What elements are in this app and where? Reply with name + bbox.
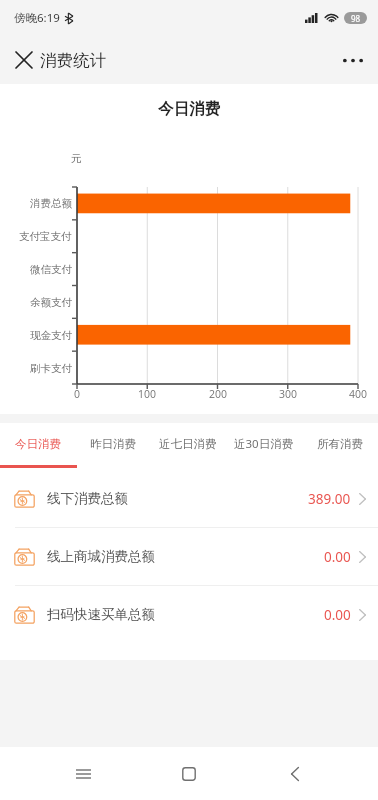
- button[interactable]: 昨日消费: [75, 423, 150, 465]
- staticText: 元: [71, 152, 82, 165]
- staticText: 0.00: [324, 606, 351, 624]
- staticText: 昨日消费: [90, 437, 136, 451]
- button[interactable]: 扫码快速买单总额: [0, 586, 378, 643]
- button[interactable]: Close: [6, 42, 42, 78]
- button[interactable]: 线下消费总额: [0, 470, 378, 527]
- staticText: 今日消费: [158, 99, 220, 119]
- staticText: 今日消费: [15, 437, 61, 451]
- staticText: 消费总额: [30, 197, 72, 210]
- button[interactable]: 今日消费: [0, 423, 75, 465]
- button[interactable]: 近七日消费: [150, 423, 226, 465]
- staticText: 线上商城消费总额: [47, 548, 155, 565]
- button[interactable]: 线上商城消费总额: [0, 528, 378, 585]
- staticText: 消费统计: [40, 50, 106, 71]
- staticText: 0: [74, 387, 81, 401]
- staticText: 近七日消费: [159, 437, 217, 451]
- staticText: 98: [351, 13, 361, 24]
- staticText: 所有消费: [317, 437, 363, 451]
- staticText: 200: [209, 387, 228, 401]
- staticText: 余额支付: [30, 296, 72, 309]
- staticText: 0.00: [324, 548, 351, 566]
- staticText: 傍晚6:19: [14, 10, 60, 26]
- button[interactable]: Back: [272, 751, 318, 797]
- button[interactable]: Recent apps: [60, 751, 106, 797]
- staticText: 近30日消费: [234, 436, 294, 452]
- button[interactable]: 近30日消费: [226, 423, 302, 465]
- staticText: 线下消费总额: [47, 490, 128, 507]
- staticText: 现金支付: [30, 329, 72, 342]
- button[interactable]: Home: [166, 751, 212, 797]
- button[interactable]: More options: [334, 41, 372, 79]
- staticText: 扫码快速买单总额: [47, 606, 155, 623]
- button[interactable]: 所有消费: [302, 423, 378, 465]
- staticText: 389.00: [308, 490, 351, 508]
- staticText: 刷卡支付: [30, 362, 72, 375]
- staticText: 微信支付: [30, 263, 72, 276]
- staticText: 支付宝支付: [19, 230, 72, 243]
- staticText: 300: [279, 387, 298, 401]
- staticText: 100: [138, 387, 157, 401]
- staticText: 400: [349, 387, 368, 401]
